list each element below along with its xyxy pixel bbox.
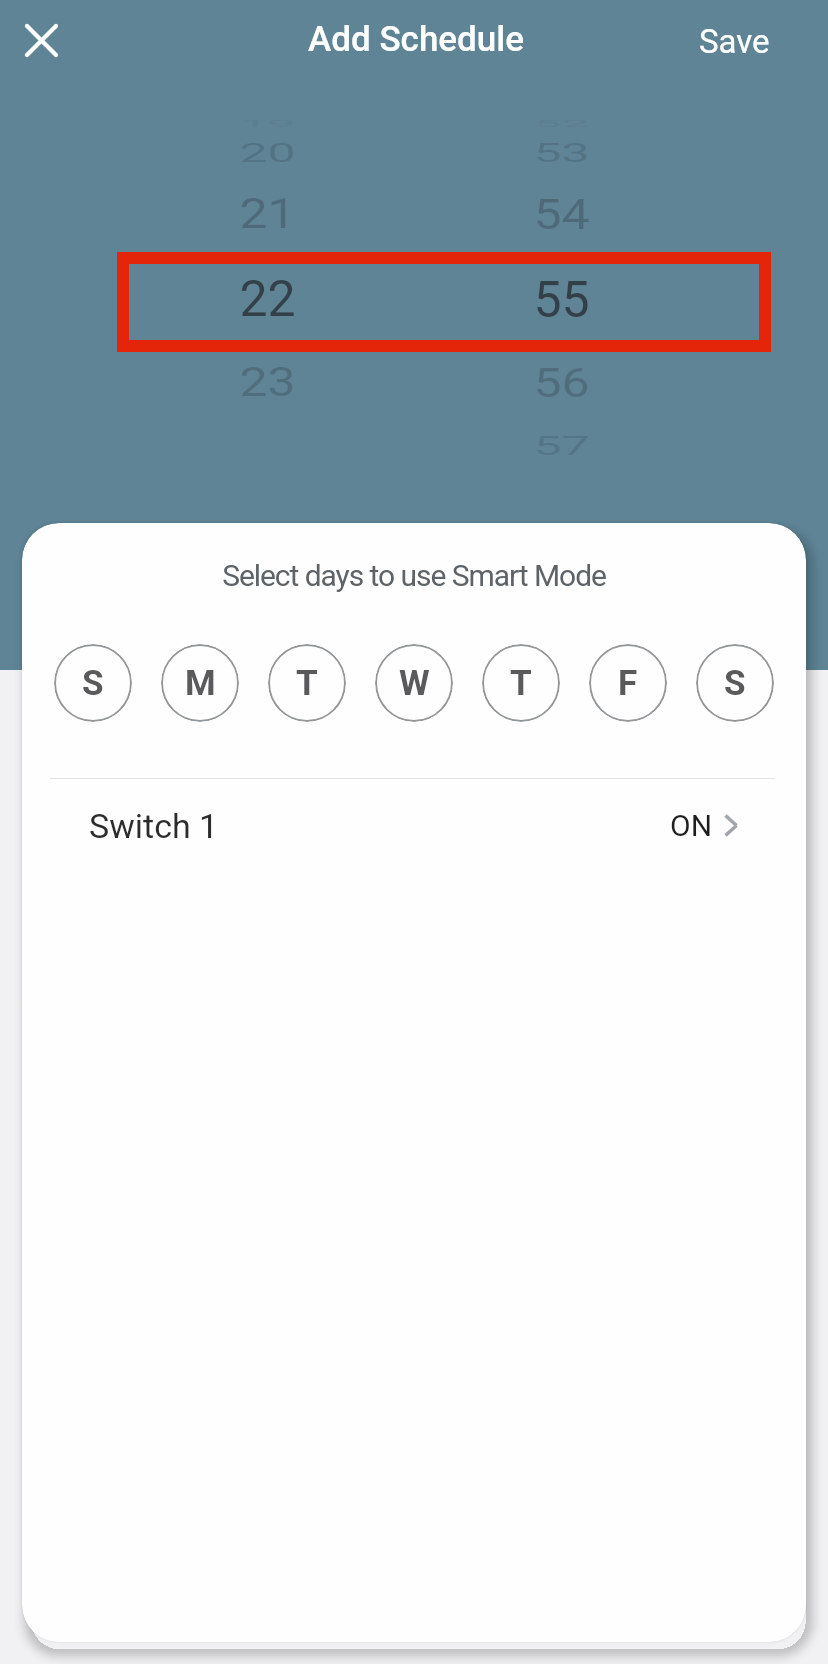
button[interactable]: F	[589, 644, 667, 722]
staticText: Add Schedule	[2, 19, 828, 60]
button[interactable]: S	[54, 644, 132, 722]
staticText: W	[399, 663, 430, 704]
staticText: M	[185, 663, 216, 704]
staticText: Save	[699, 22, 770, 61]
staticText: 23	[239, 358, 296, 407]
button[interactable]: Minute picker	[437, 100, 737, 470]
button[interactable]: Close	[10, 9, 72, 71]
staticText: T	[510, 663, 532, 704]
staticText: ON	[670, 808, 713, 843]
button[interactable]: T	[268, 644, 346, 722]
button[interactable]: W	[375, 644, 453, 722]
staticText: 54	[533, 190, 590, 240]
staticText: S	[82, 663, 104, 704]
staticText: 57	[533, 431, 590, 461]
button[interactable]: S	[696, 644, 774, 722]
staticText: F	[618, 663, 638, 704]
staticText: 20	[239, 138, 296, 169]
staticText: S	[724, 663, 746, 704]
button[interactable]: Save	[681, 8, 788, 74]
button[interactable]: Switch 1	[22, 779, 806, 872]
staticText: 56	[533, 359, 590, 408]
staticText: 53	[533, 138, 590, 169]
staticText: 22	[239, 270, 296, 329]
staticText: Switch 1	[89, 806, 219, 846]
button[interactable]: T	[482, 644, 560, 722]
staticText: Select days to use Smart Mode	[22, 558, 806, 593]
staticText: 21	[239, 189, 296, 239]
button[interactable]: M	[161, 644, 239, 722]
staticText: 55	[533, 271, 590, 330]
other: Open Switch 1	[724, 814, 738, 837]
button[interactable]: Hour picker	[117, 100, 417, 470]
staticText: T	[296, 663, 318, 704]
